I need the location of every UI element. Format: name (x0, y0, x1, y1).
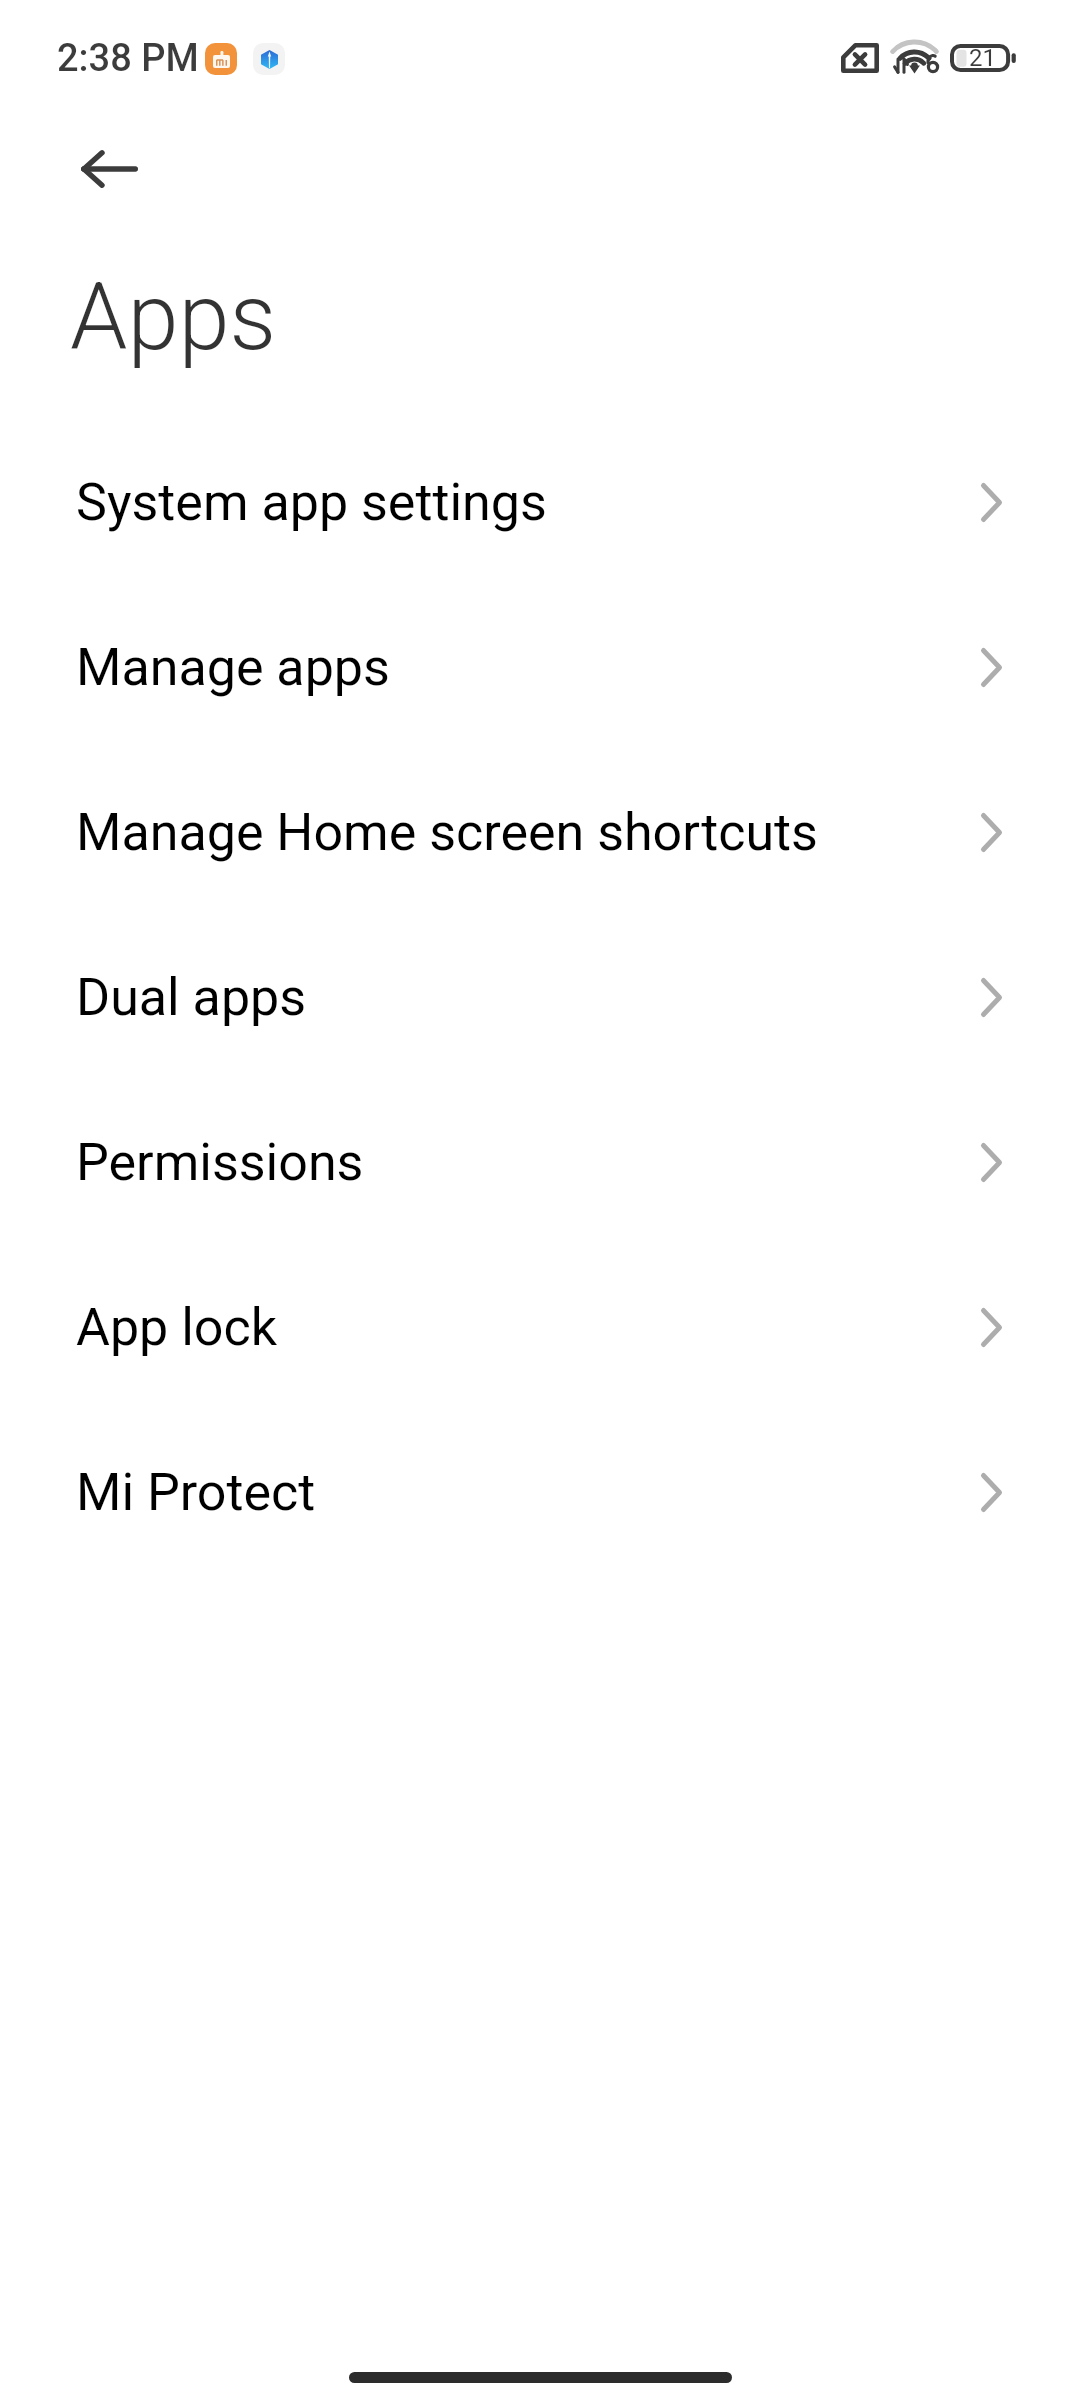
staticText: 21 (969, 44, 996, 72)
button[interactable]: Permissions (0, 1080, 1080, 1245)
staticText: Mi Protect (76, 1462, 316, 1523)
staticText: Dual apps (76, 967, 307, 1028)
staticText: App lock (76, 1297, 278, 1358)
staticText: Manage apps (76, 637, 390, 698)
staticText: 2:38 PM (57, 36, 199, 81)
staticText: Permissions (76, 1132, 364, 1193)
button[interactable]: System app settings (0, 420, 1080, 585)
staticText: System app settings (76, 472, 547, 533)
button[interactable]: Manage apps (0, 585, 1080, 750)
staticText: Manage Home screen shortcuts (76, 802, 818, 863)
staticText: Apps (70, 264, 277, 372)
button[interactable]: Back (61, 133, 157, 205)
button[interactable]: App lock (0, 1245, 1080, 1410)
button[interactable]: Manage Home screen shortcuts (0, 750, 1080, 915)
button[interactable]: Mi Protect (0, 1410, 1080, 1575)
button[interactable]: Dual apps (0, 915, 1080, 1080)
